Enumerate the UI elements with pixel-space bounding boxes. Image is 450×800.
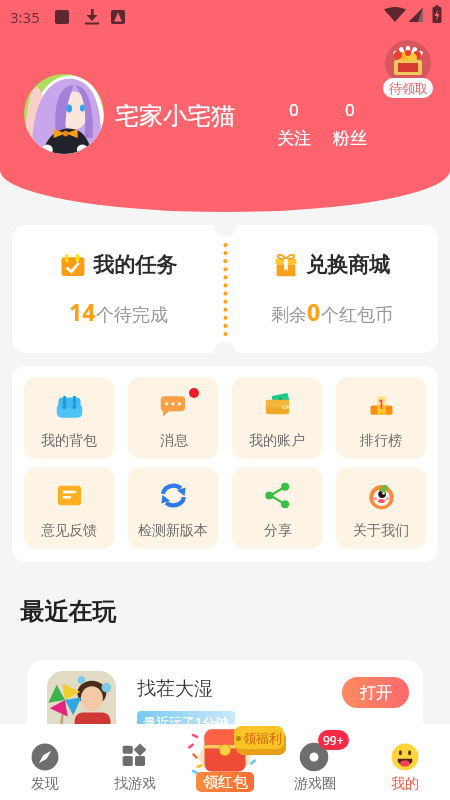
button[interactable]: 我的 [360,724,450,800]
staticText: 我的账户 [249,432,305,450]
staticText: 领福利 [243,730,282,746]
staticText: 游戏圈 [294,775,336,793]
staticText: 兑换商城 [306,252,390,278]
staticText: 个待完成 [96,304,168,327]
button[interactable]: 我的任务 [12,225,225,353]
button[interactable]: 发现 [0,724,90,800]
staticText: 我的 [391,775,419,793]
staticText: 检测新版本 [138,522,208,540]
button[interactable]: 我的背包 [24,377,114,459]
staticText: 0 [307,296,321,327]
button[interactable]: 找游戏 [90,724,180,800]
staticText: 打开 [360,683,392,703]
staticText: 我的背包 [41,432,97,450]
staticText: 14 [69,296,96,327]
button[interactable]: 关于我们 [336,467,426,549]
button[interactable]: 99+ [270,724,360,800]
staticText: 发现 [31,775,59,793]
staticText: 分享 [264,522,292,540]
staticText: 个红包币 [321,304,393,327]
staticText: 剩余 [271,304,307,327]
button[interactable]: 我的账户 [232,377,322,459]
staticText: 消息 [160,432,188,450]
staticText: 待领取 [389,80,428,96]
staticText: 关注 [277,128,311,149]
button[interactable]: 意见反馈 [24,467,114,549]
button[interactable]: 消息 [128,377,218,459]
staticText: 我的任务 [93,252,177,278]
staticText: 最近在玩 [20,597,116,627]
staticText: 找茬大湿 [137,677,213,701]
staticText: 99+ [323,732,344,748]
staticText: 粉丝 [333,128,367,149]
staticText: 0 [345,98,355,121]
staticText: 0 [289,98,299,121]
staticText: 3:35 [10,7,40,27]
button[interactable]: 找茬大湿 [27,660,423,750]
staticText: 找游戏 [114,775,156,793]
button[interactable]: 检测新版本 [128,467,218,549]
staticText: 关于我们 [353,522,409,540]
button[interactable]: 打开 [342,677,409,708]
staticText: 最近玩了1分钟 [143,713,229,731]
staticText: 领红包 [203,773,248,792]
button[interactable]: 待领取礼物 [382,37,434,98]
button[interactable]: 兑换商城 [225,225,438,353]
button[interactable]: 分享 [232,467,322,549]
staticText: 宅家小宅猫 [115,101,235,131]
staticText: 排行榜 [360,432,402,450]
staticText: 意见反馈 [41,522,97,540]
button[interactable]: 排行榜 [336,377,426,459]
button[interactable]: 领红包 [170,724,280,800]
